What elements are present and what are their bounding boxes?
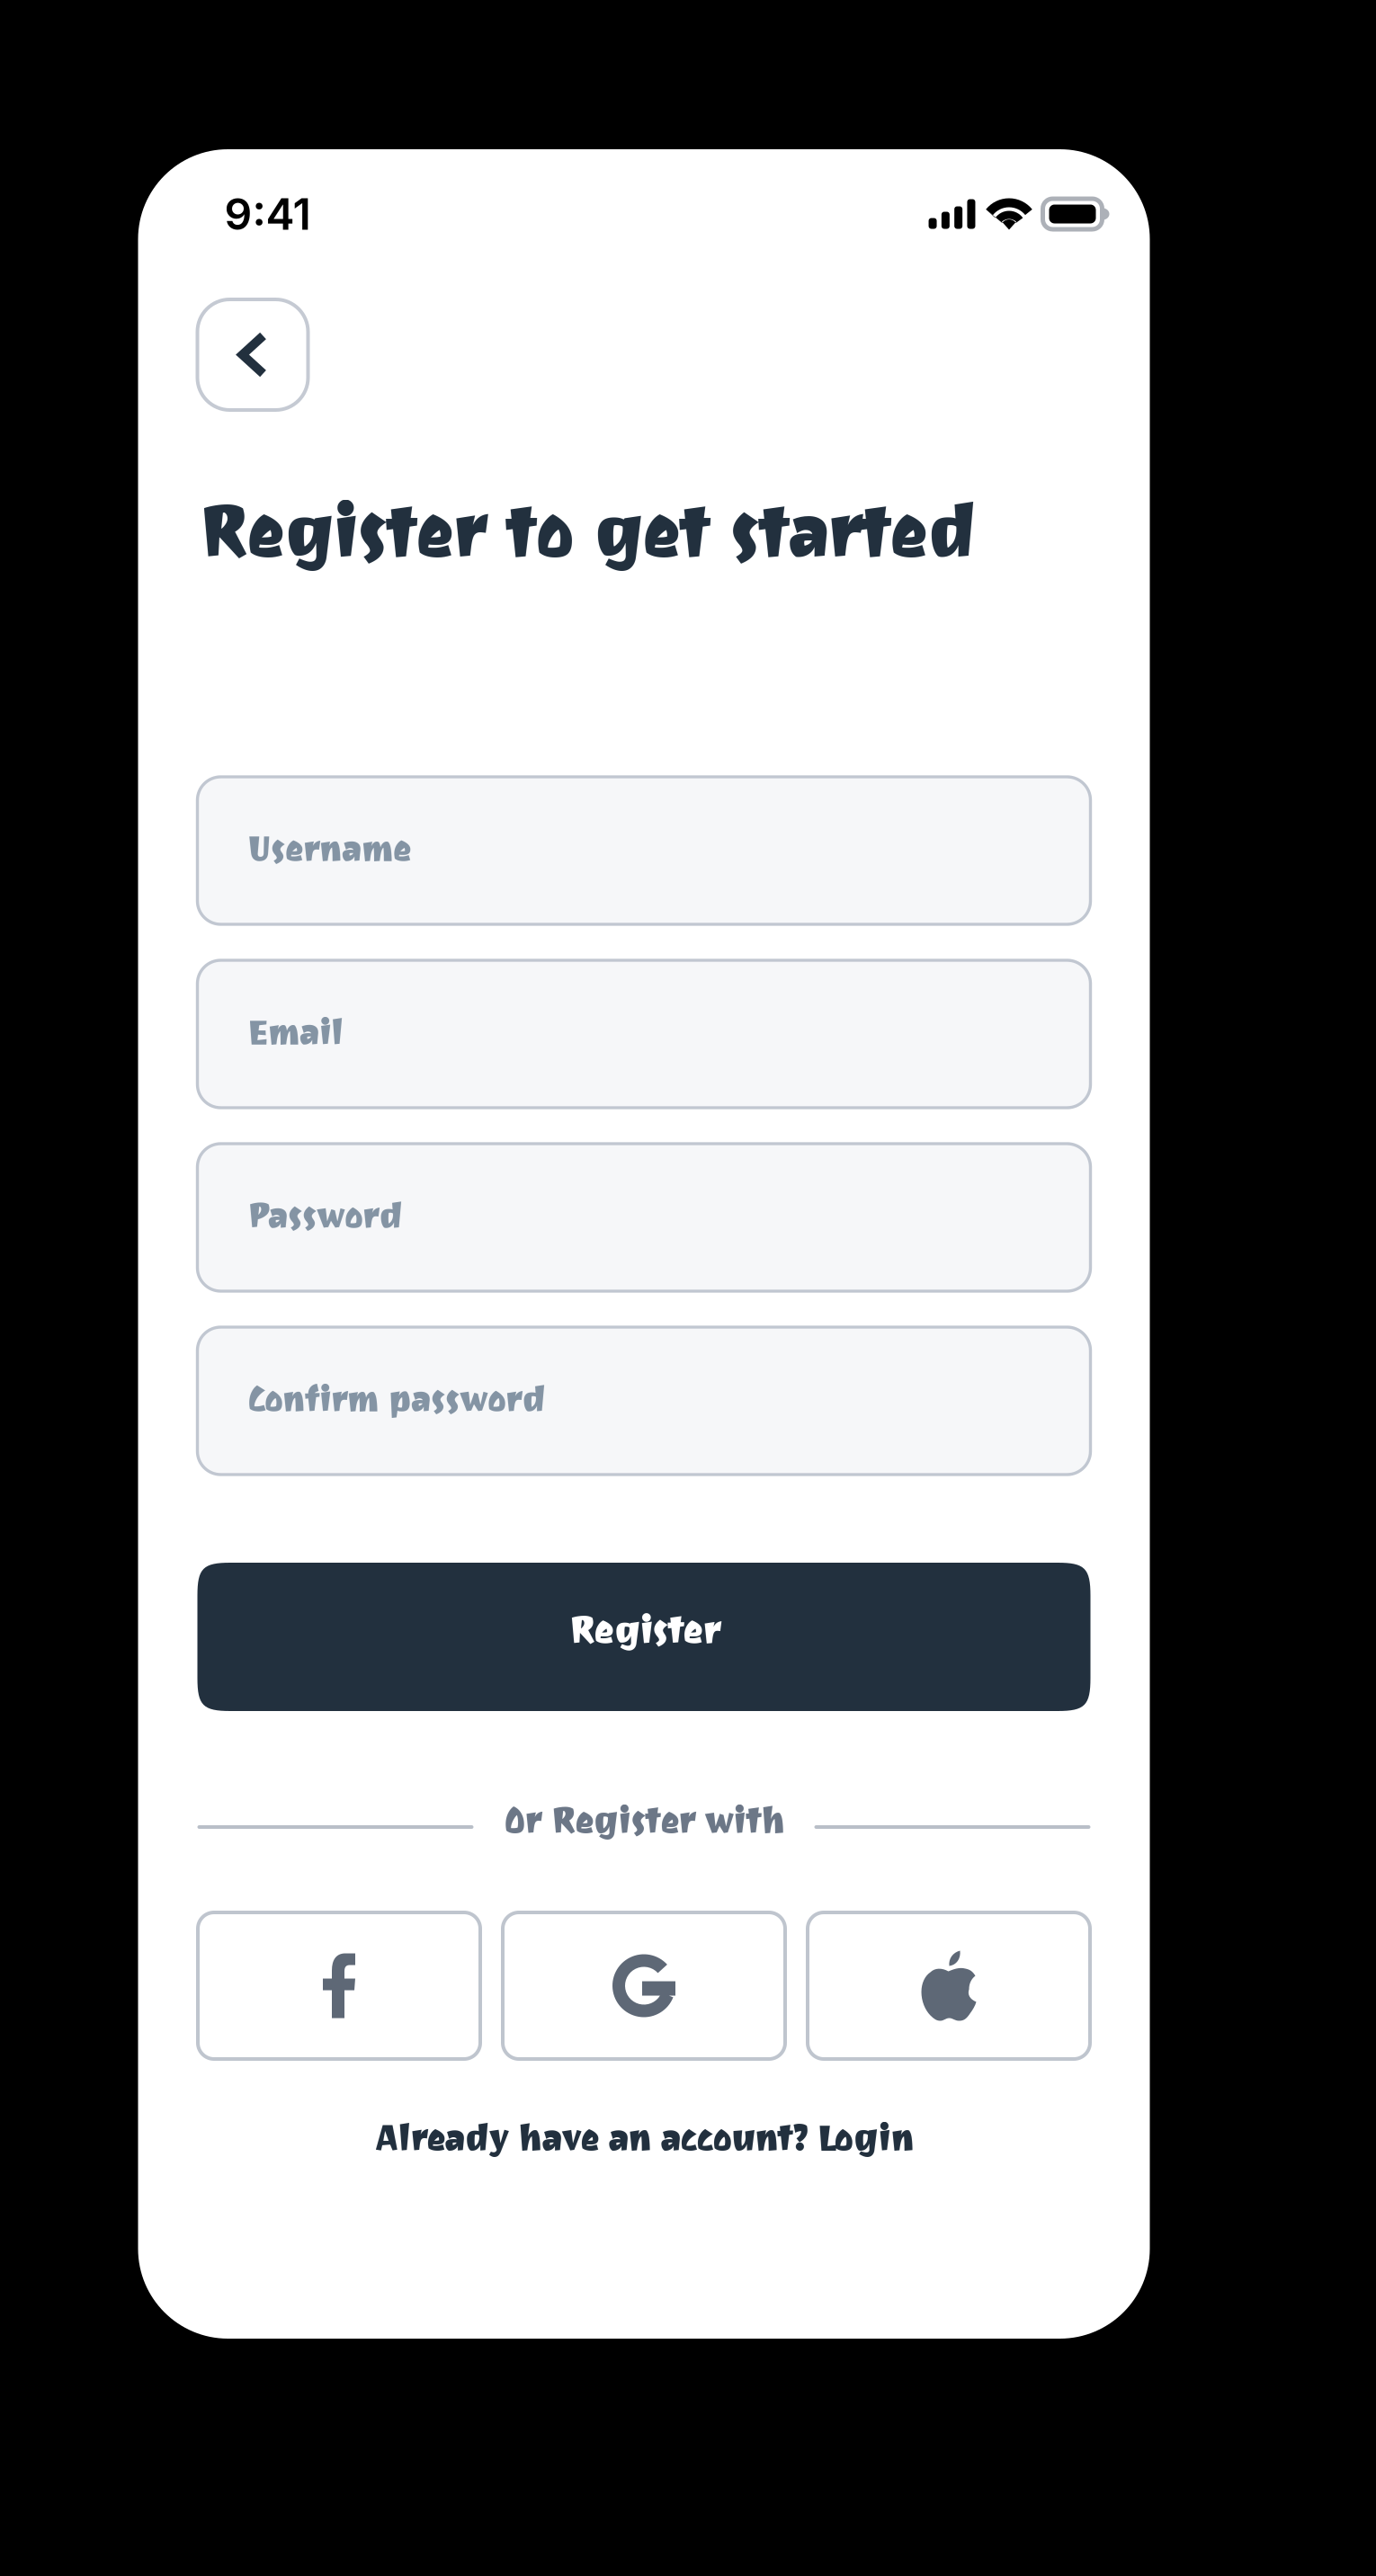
staticText: Username — [247, 822, 411, 888]
staticText: Password — [247, 1189, 402, 1255]
button[interactable]: Back — [197, 299, 308, 410]
button[interactable]: Register — [197, 1563, 1090, 1711]
button[interactable]: Already have an account? Login — [197, 2111, 1090, 2178]
button[interactable]: Confirm password — [197, 1327, 1090, 1475]
staticText: Or Register with — [504, 1793, 784, 1861]
staticText: Email — [247, 1005, 342, 1072]
staticText: Confirm password — [247, 1372, 545, 1439]
button[interactable]: Username — [197, 777, 1090, 924]
staticText: Register to get started — [197, 477, 974, 613]
staticText: Already have an account? Login — [375, 2110, 913, 2179]
button[interactable]: Continue with Facebook — [198, 1912, 480, 2059]
staticText: 9:41 — [224, 188, 311, 240]
button[interactable]: Email — [197, 960, 1090, 1108]
staticText: Register — [568, 1601, 719, 1673]
button[interactable]: Continue with Google — [503, 1912, 785, 2059]
button[interactable]: Continue with Apple — [808, 1912, 1090, 2059]
button[interactable]: Password — [197, 1144, 1090, 1291]
